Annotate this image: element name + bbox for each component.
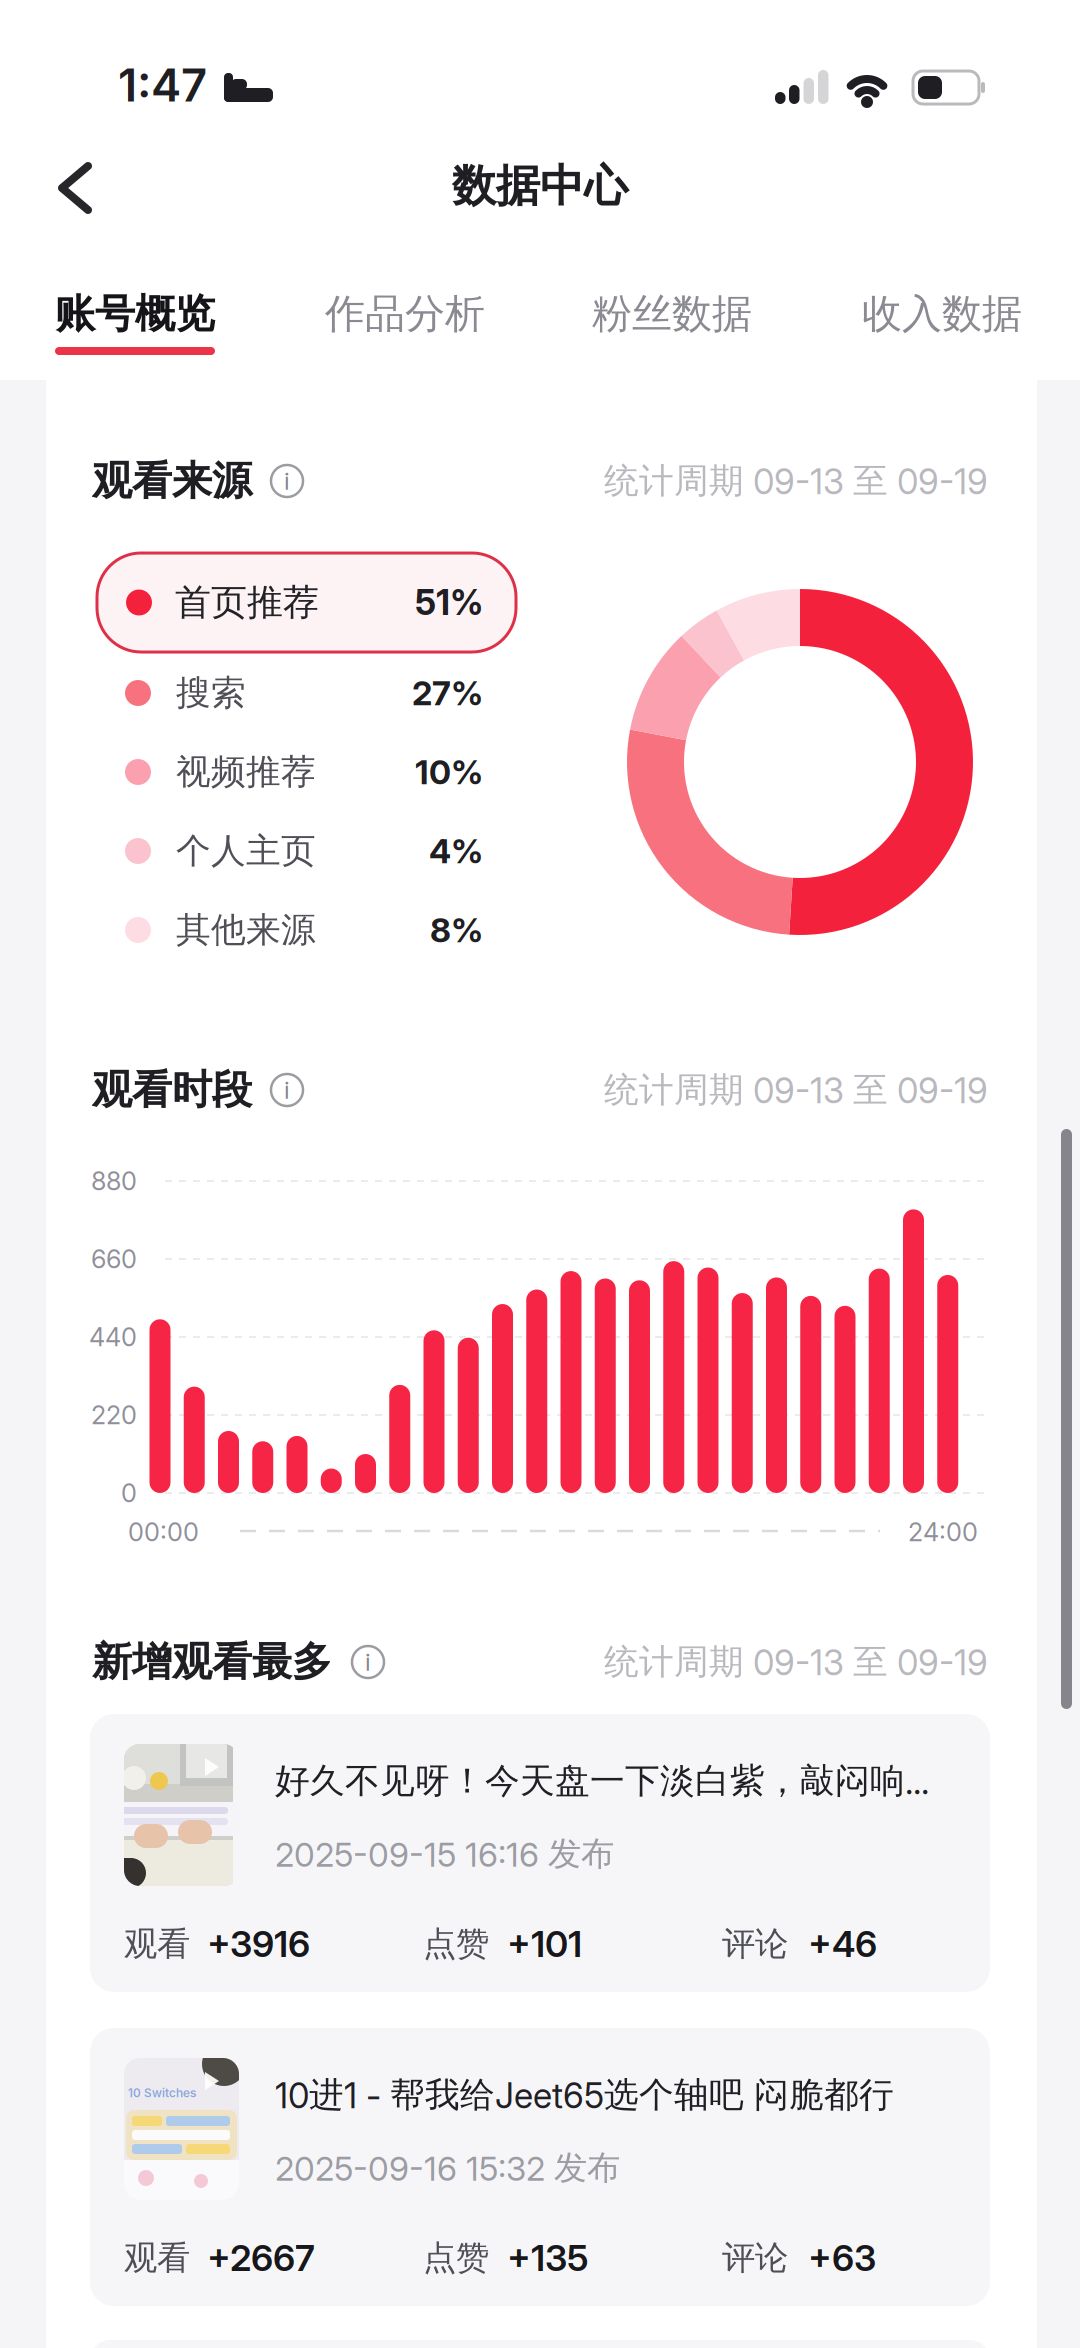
staticText: 440 [89,1322,137,1352]
staticText: 评论 [722,1923,788,1964]
staticText: 27% [412,673,483,713]
staticText: 统计周期 09-13 至 09-19 [604,460,988,502]
staticText: 660 [91,1244,137,1274]
staticText: 880 [91,1166,137,1196]
staticText: 统计周期 09-13 至 09-19 [604,1641,988,1683]
button[interactable]: 返回 [40,150,110,226]
staticText: 10% [415,752,483,792]
staticText: 新增观看最多 [92,1637,332,1686]
button[interactable]: 好久不见呀！今天盘一下淡白紫，敲闷响... [90,1714,990,1992]
staticText: 搜索 [176,672,246,714]
staticText: 点赞 [423,2237,489,2278]
staticText: 观看时段 [92,1065,252,1114]
button[interactable]: 收入数据 [862,290,1062,338]
button[interactable]: 说明 [265,1068,309,1112]
staticText: 收入数据 [862,289,1022,338]
staticText: 作品分析 [325,289,485,338]
staticText: 观看来源 [92,456,252,505]
staticText: +46 [808,1923,877,1965]
staticText: 51% [415,582,483,623]
button[interactable]: 作品分析 [325,290,525,338]
staticText: 个人主页 [176,830,316,872]
staticText: 00:00 [128,1517,199,1547]
staticText: +2667 [207,2237,315,2279]
staticText: 好久不见呀！今天盘一下淡白紫，敲闷响... [275,1760,929,1802]
staticText: i [284,1076,290,1104]
staticText: 首页推荐 [175,580,319,625]
staticText: 10 Switches [128,2086,197,2100]
staticText: 1:47 [118,58,207,112]
staticText: i [365,1648,371,1676]
staticText: 4% [429,831,483,871]
staticText: 2025-09-16 15:32 发布 [275,2147,620,2188]
button[interactable]: 账号概览 [55,290,255,356]
staticText: 2025-09-15 16:16 发布 [275,1833,614,1874]
staticText: +135 [507,2237,589,2279]
staticText: 统计周期 09-13 至 09-19 [604,1069,988,1111]
staticText: 账号概览 [55,289,215,338]
staticText: 8% [430,910,483,950]
staticText: +63 [808,2237,876,2279]
staticText: 观看 [124,1923,190,1964]
button[interactable]: 粉丝数据 [592,290,792,338]
staticText: 粉丝数据 [592,289,752,338]
staticText: 10进1 - 帮我给Jeet65选个轴吧 闷脆都行 [275,2074,894,2116]
staticText: 观看 [124,2237,190,2278]
staticText: 评论 [722,2237,788,2278]
button[interactable]: 说明 [265,459,309,503]
button[interactable]: 说明 [346,1640,390,1684]
staticText: 220 [91,1400,137,1430]
staticText: 0 [121,1478,137,1508]
staticText: 点赞 [423,1923,489,1964]
staticText: +3916 [207,1923,310,1965]
staticText: +101 [507,1923,582,1965]
staticText: i [284,467,290,495]
staticText: 视频推荐 [176,751,316,793]
staticText: 数据中心 [452,159,628,213]
staticText: 其他来源 [176,909,316,951]
staticText: 24:00 [908,1517,978,1547]
button[interactable]: 10 Switches [90,2028,990,2306]
button[interactable]: 首页推荐 [97,553,516,652]
